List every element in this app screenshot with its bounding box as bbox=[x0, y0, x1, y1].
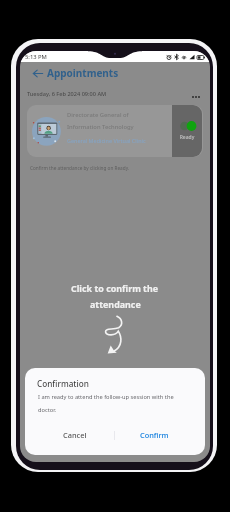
button[interactable]: More options bbox=[185, 87, 207, 107]
button[interactable]: Confirm bbox=[115, 424, 194, 446]
staticText: Appointments bbox=[47, 66, 119, 80]
staticText: 5:13 PM bbox=[25, 53, 47, 61]
staticText: Information Technology bbox=[67, 123, 134, 131]
staticText: Confirm bbox=[140, 430, 169, 440]
staticText: Confirm the attendance by clicking on Re… bbox=[30, 165, 130, 171]
staticText: Directorate General of bbox=[67, 111, 129, 119]
button[interactable]: Ready bbox=[172, 105, 202, 157]
staticText: Ready bbox=[172, 134, 202, 141]
button[interactable]: Appointments bbox=[47, 66, 119, 80]
button[interactable]: Cancel bbox=[36, 424, 114, 446]
button[interactable]: Back bbox=[30, 65, 46, 81]
staticText: General Medicine Virtual Clinic bbox=[67, 137, 146, 144]
button[interactable]: Directorate General of bbox=[27, 105, 203, 157]
staticText: attendance bbox=[90, 298, 141, 310]
staticText: Cancel bbox=[63, 430, 87, 440]
staticText: Confirmation bbox=[37, 378, 89, 389]
staticText: I am ready to attend the follow-up sessi… bbox=[38, 393, 180, 414]
staticText: Tuesday, 6 Feb 2024 09:00 AM bbox=[27, 90, 107, 98]
staticText: Click to confirm the bbox=[71, 282, 159, 294]
